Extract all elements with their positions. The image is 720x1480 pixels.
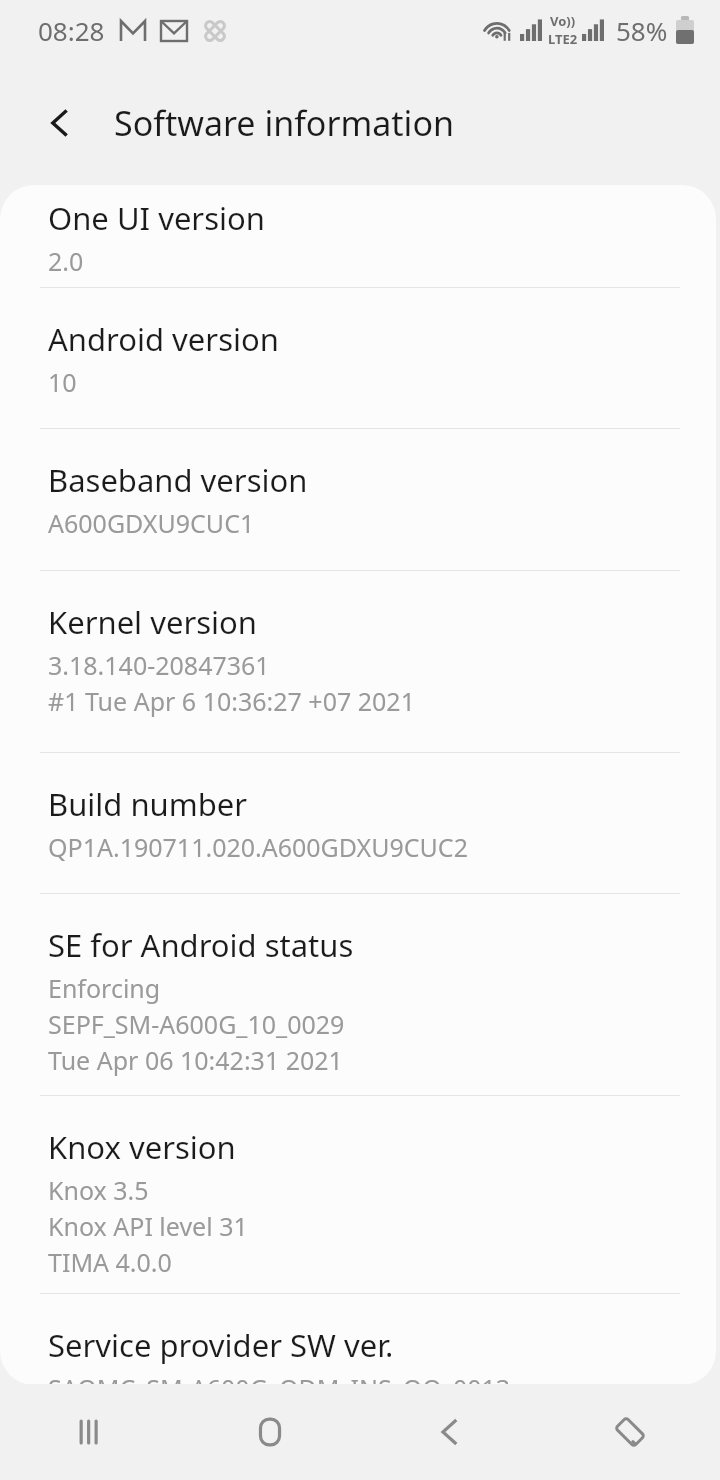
staticText: Knox version xyxy=(48,1126,236,1168)
staticText: #1 Tue Apr 6 10:36:27 +07 2021 xyxy=(48,684,415,718)
staticText: Knox API level 31 xyxy=(48,1209,248,1243)
button[interactable]: Kernel version xyxy=(0,571,716,752)
staticText: Kernel version xyxy=(48,601,257,643)
button[interactable]: Baseband version xyxy=(0,429,716,570)
staticText: Service provider SW ver. xyxy=(48,1324,394,1366)
staticText: A600GDXU9CUC1 xyxy=(48,506,255,540)
staticText: Baseband version xyxy=(48,459,308,501)
staticText: Tue Apr 06 10:42:31 2021 xyxy=(48,1043,343,1077)
button[interactable]: Back xyxy=(360,1384,540,1480)
button[interactable]: Recent apps xyxy=(0,1384,180,1480)
button[interactable]: Change keyboard xyxy=(540,1384,720,1480)
button[interactable]: Home xyxy=(180,1384,360,1480)
staticText: One UI version xyxy=(48,197,265,239)
staticText: Knox 3.5 xyxy=(48,1173,149,1207)
staticText: Vo)) xyxy=(550,12,576,30)
button[interactable]: Knox version xyxy=(0,1096,716,1293)
button[interactable]: SE for Android status xyxy=(0,894,716,1095)
button[interactable]: Android version xyxy=(0,288,716,428)
staticText: SEPF_SM-A600G_10_0029 xyxy=(48,1007,345,1041)
button[interactable]: One UI version xyxy=(0,185,716,287)
staticText: 2.0 xyxy=(48,244,84,278)
staticText: QP1A.190711.020.A600GDXU9CUC2 xyxy=(48,830,468,864)
staticText: Android version xyxy=(48,318,279,360)
staticText: LTE2 xyxy=(548,30,578,48)
button[interactable]: Back xyxy=(28,91,92,155)
button[interactable]: Service provider SW ver. xyxy=(0,1294,716,1385)
staticText: 08:28 xyxy=(38,13,105,48)
button[interactable]: Build number xyxy=(0,753,716,893)
staticText: SE for Android status xyxy=(48,924,354,966)
staticText: Software information xyxy=(114,100,454,146)
staticText: Enforcing xyxy=(48,971,161,1005)
staticText: 3.18.140-20847361 xyxy=(48,648,270,682)
staticText: TIMA 4.0.0 xyxy=(48,1245,172,1279)
staticText: 58% xyxy=(616,13,668,48)
staticText: 10 xyxy=(48,365,77,399)
staticText: Build number xyxy=(48,783,248,825)
staticText: SAOMC_SM-A600G_ODM_INS_OO_0013 xyxy=(48,1371,511,1385)
